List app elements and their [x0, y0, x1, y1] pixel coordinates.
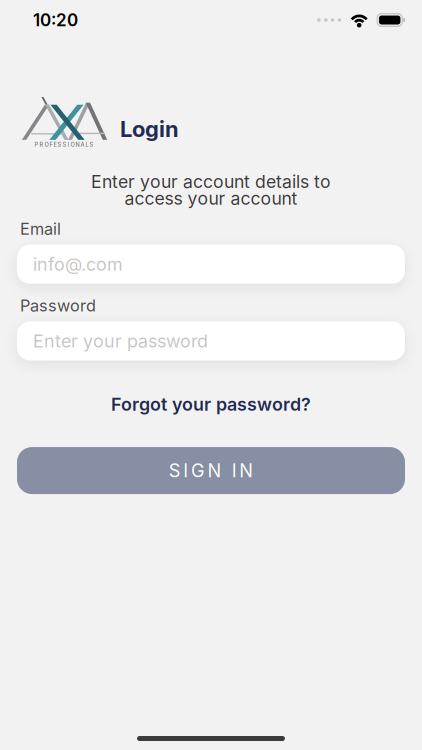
staticText: access your account — [124, 188, 297, 209]
staticText: Email — [20, 219, 61, 239]
staticText: 10:20 — [33, 10, 78, 30]
staticText: Enter your password — [33, 330, 208, 352]
button[interactable]: Forgot your password? — [111, 393, 311, 415]
staticText: Forgot your password? — [111, 393, 311, 415]
button[interactable]: info@.com — [17, 245, 405, 284]
staticText: info@.com — [33, 253, 123, 275]
button[interactable]: SIGN IN — [0, 447, 422, 494]
staticText: Login — [120, 116, 179, 142]
staticText: P R O F E S S I O N A L S — [34, 141, 93, 148]
button[interactable]: Enter your password — [17, 321, 405, 360]
staticText: Enter your account details to — [91, 171, 331, 192]
staticText: Password — [20, 296, 96, 315]
staticText: SIGN IN — [169, 460, 253, 481]
